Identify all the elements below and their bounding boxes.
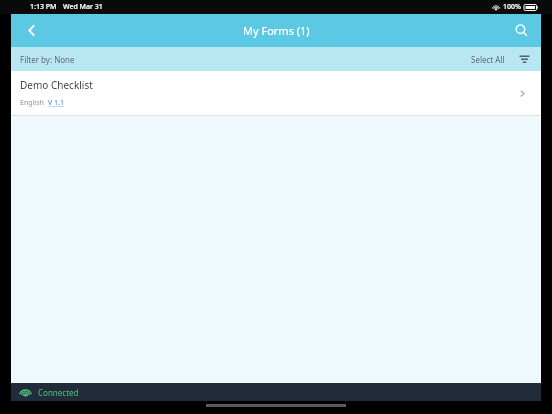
staticText: Select All xyxy=(471,54,505,65)
staticText: English xyxy=(20,98,44,108)
button[interactable]: Demo Checklist xyxy=(11,71,541,116)
button[interactable]: Select All xyxy=(469,51,507,68)
button[interactable]: Filter xyxy=(516,51,532,67)
button[interactable]: Back xyxy=(11,14,51,47)
staticText: 100% xyxy=(503,2,521,12)
button[interactable]: Search xyxy=(501,14,541,47)
staticText: 1:13 PM xyxy=(30,2,57,12)
button[interactable]: Filter by: None xyxy=(20,51,75,68)
staticText: Wed Mar 31 xyxy=(63,2,103,12)
staticText: Connected xyxy=(38,387,79,398)
staticText: My Forms (1) xyxy=(243,23,310,38)
staticText: Demo Checklist xyxy=(20,78,93,92)
button[interactable]: V 1.1 xyxy=(48,98,64,108)
staticText: Filter by: None xyxy=(20,54,75,65)
